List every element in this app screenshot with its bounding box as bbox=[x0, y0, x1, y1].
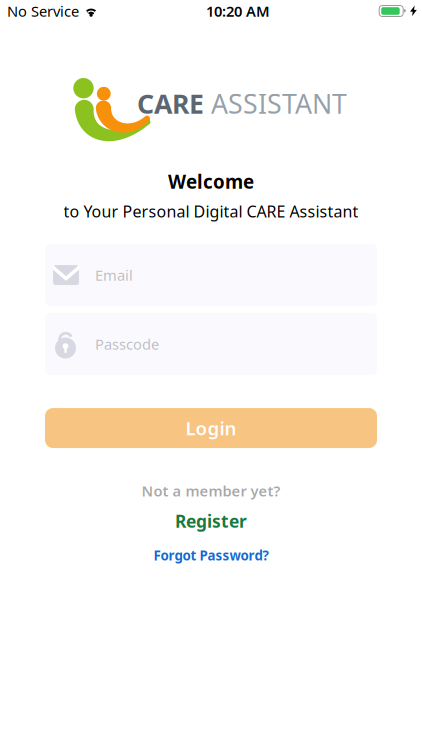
button[interactable]: Login bbox=[45, 408, 377, 448]
staticText: Welcome bbox=[168, 169, 254, 194]
staticText: No Service bbox=[7, 1, 79, 21]
staticText: 10:20 AM bbox=[206, 1, 270, 21]
staticText: to Your Personal Digital CARE Assistant bbox=[63, 201, 358, 222]
staticText: Login bbox=[185, 416, 236, 440]
staticText: Register bbox=[175, 509, 247, 532]
staticText: Email bbox=[95, 265, 133, 285]
staticText: CARE bbox=[137, 86, 204, 121]
staticText: Passcode bbox=[95, 334, 159, 354]
button[interactable]: Forgot Password? bbox=[153, 546, 268, 564]
staticText: ASSISTANT bbox=[204, 86, 347, 121]
button[interactable]: Register bbox=[175, 509, 247, 532]
staticText: Not a member yet? bbox=[141, 481, 280, 500]
staticText: Forgot Password? bbox=[153, 546, 268, 564]
